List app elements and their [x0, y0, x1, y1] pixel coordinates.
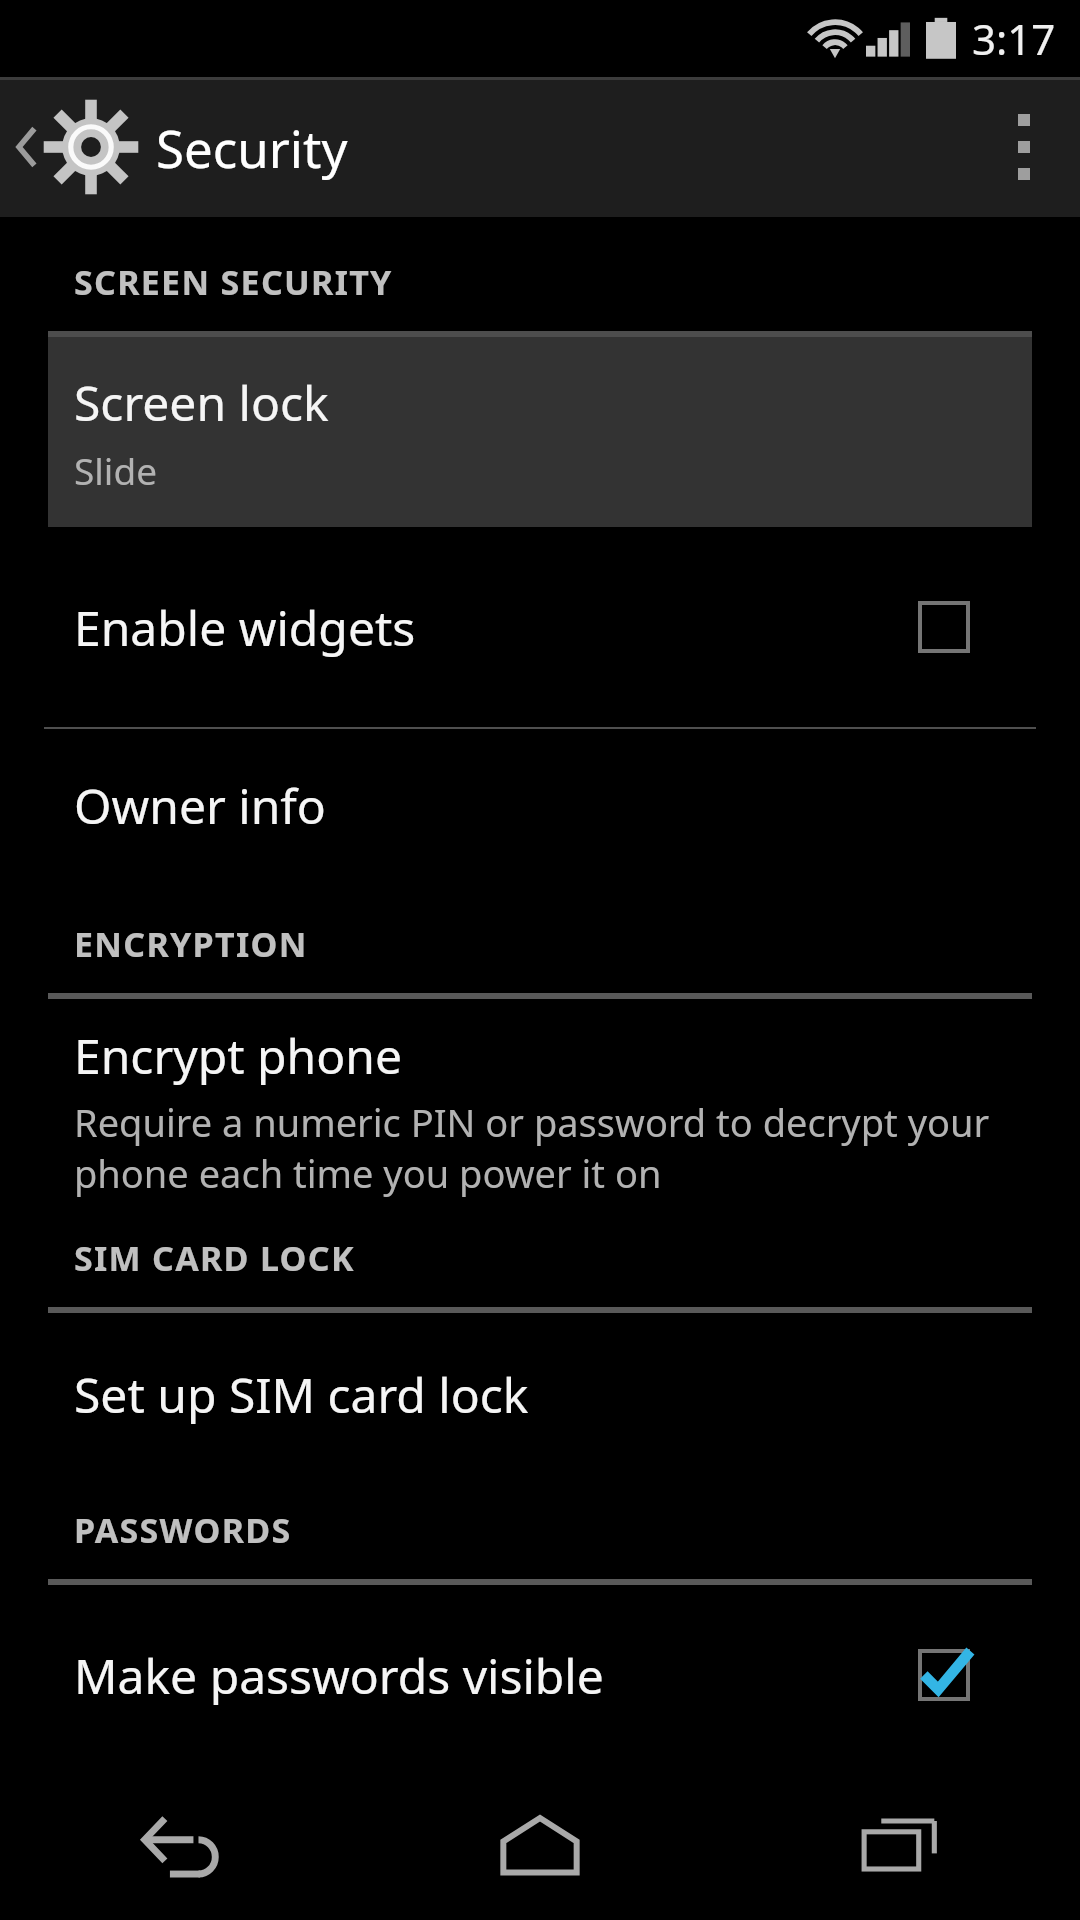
- staticText: Encrypt phone: [74, 1023, 402, 1088]
- button[interactable]: Encrypt phone: [0, 999, 1080, 1199]
- button[interactable]: Set up SIM card lock: [0, 1313, 1080, 1475]
- button[interactable]: Enable widgets: [0, 527, 1080, 727]
- button[interactable]: Screen lock: [48, 337, 1032, 527]
- staticText: Make passwords visible: [74, 1643, 604, 1708]
- staticText: Require a numeric PIN or password to dec…: [74, 1096, 1024, 1199]
- staticText: SIM CARD LOCK: [74, 1235, 355, 1281]
- staticText: Owner info: [74, 773, 326, 838]
- button[interactable]: More options: [968, 77, 1080, 217]
- button[interactable]: Recent apps: [720, 1770, 1080, 1920]
- button[interactable]: Owner info: [0, 729, 1080, 881]
- staticText: Set up SIM card lock: [74, 1362, 529, 1427]
- button[interactable]: Make passwords visible: [0, 1585, 1080, 1765]
- button[interactable]: Security: [12, 77, 348, 217]
- staticText: SCREEN SECURITY: [74, 259, 393, 305]
- staticText: Slide: [74, 445, 158, 495]
- button[interactable]: Home: [360, 1770, 720, 1920]
- staticText: PASSWORDS: [74, 1507, 292, 1553]
- button[interactable]: Back: [0, 1770, 360, 1920]
- staticText: ENCRYPTION: [74, 921, 308, 967]
- staticText: 3:17: [972, 10, 1056, 67]
- staticText: Screen lock: [74, 370, 329, 435]
- staticText: Security: [156, 113, 348, 182]
- staticText: Enable widgets: [74, 595, 416, 660]
